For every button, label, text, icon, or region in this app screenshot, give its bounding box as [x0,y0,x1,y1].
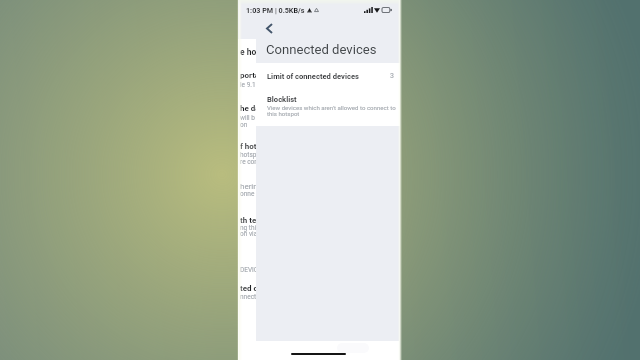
staticText: f hotspot [240,142,273,151]
staticText: onne [240,190,255,198]
staticText: hotspo [240,151,261,159]
staticText: ted devices [240,284,282,293]
staticText: nnecte [240,293,260,301]
staticText: on [240,121,248,129]
staticText: ng thi [240,224,257,232]
button[interactable]: Blocklist [256,95,400,126]
staticText: e hotspot [240,47,276,57]
staticText: 1:03 PM | 0.5KB/s [246,6,305,14]
staticText: Limit of connected devices [267,72,359,81]
staticText: th tethering [240,216,282,225]
staticText: Connected devices [266,42,377,57]
staticText: View devices which aren't allowed to con… [267,104,397,118]
staticText: he data [240,104,267,113]
staticText: on via [240,230,258,238]
staticText: will b [240,114,255,122]
staticText: re conn [240,158,262,166]
staticText: 3 [390,72,394,80]
staticText: le 9.1 [240,81,256,89]
staticText: DEVICES [240,266,266,274]
button[interactable]: Back [261,20,277,36]
staticText: portable ho [240,71,282,80]
button[interactable]: Limit of connected devices [256,63,400,89]
staticText: hering [240,182,263,191]
staticText: Blocklist [267,95,297,104]
